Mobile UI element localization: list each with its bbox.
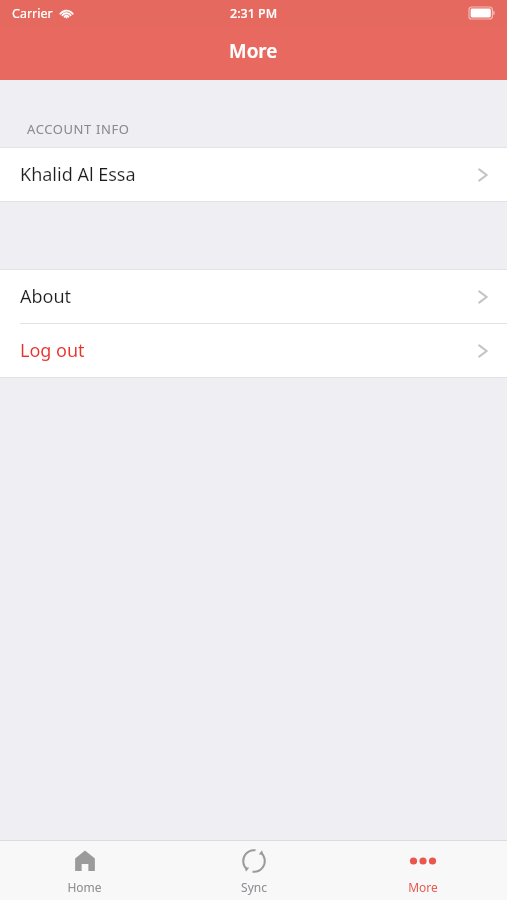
button[interactable]: Log out: [0, 324, 507, 377]
button[interactable]: Sync: [169, 841, 338, 900]
button[interactable]: More: [338, 841, 507, 900]
button[interactable]: About: [0, 270, 507, 323]
staticText: About: [20, 284, 477, 309]
staticText: Home: [67, 879, 102, 895]
staticText: More: [408, 879, 438, 895]
button[interactable]: Home: [0, 841, 169, 900]
staticText: 2:31 PM: [230, 5, 278, 22]
staticText: Carrier: [12, 5, 53, 22]
button[interactable]: Khalid Al Essa: [0, 148, 507, 201]
staticText: Log out: [20, 338, 477, 363]
staticText: Khalid Al Essa: [20, 162, 477, 187]
staticText: More: [229, 38, 278, 64]
staticText: Sync: [241, 879, 267, 895]
staticText: ACCOUNT INFO: [27, 120, 130, 138]
